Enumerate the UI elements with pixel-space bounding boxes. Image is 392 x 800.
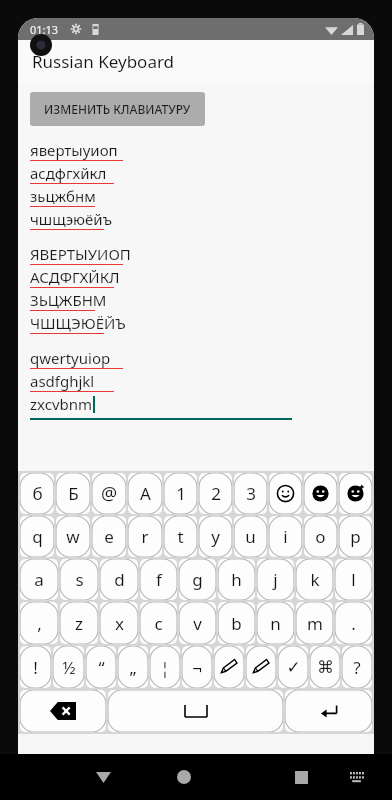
button[interactable]: z <box>60 602 98 644</box>
button[interactable]: x <box>100 602 138 644</box>
button[interactable]: A <box>128 473 162 514</box>
button[interactable]: Back <box>86 760 120 794</box>
button[interactable]: „ <box>118 646 148 688</box>
staticText: асдфгхйкл <box>30 163 107 183</box>
staticText: qwertyuiop <box>30 348 111 368</box>
staticText: g <box>192 568 203 591</box>
button[interactable]: r <box>128 516 162 557</box>
button[interactable]: f <box>140 559 177 600</box>
button[interactable]: ⌘ <box>310 646 340 688</box>
staticText: zxcvbnm <box>30 394 93 414</box>
button[interactable]: m <box>296 602 333 644</box>
button[interactable]: Emoji <box>304 473 337 514</box>
button[interactable]: Enter <box>285 690 372 732</box>
staticText: asdfghjkl <box>30 371 95 391</box>
button[interactable]: n <box>257 602 294 644</box>
button[interactable]: 3 <box>234 473 267 514</box>
button[interactable]: j <box>257 559 294 600</box>
staticText: ¬ <box>192 656 202 679</box>
button[interactable]: a <box>20 559 58 600</box>
button[interactable]: w <box>56 516 90 557</box>
button[interactable]: 1 <box>164 473 197 514</box>
staticText: i <box>283 525 288 548</box>
staticText: a <box>34 568 44 591</box>
staticText: s <box>75 568 84 591</box>
staticText: ? <box>353 656 361 679</box>
button[interactable]: q <box>20 516 54 557</box>
staticText: j <box>273 568 278 591</box>
staticText: f <box>156 568 162 591</box>
staticText: 01:13 <box>30 22 59 37</box>
staticText: q <box>32 525 43 548</box>
button[interactable]: h <box>218 559 255 600</box>
button[interactable]: b <box>218 602 255 644</box>
button[interactable]: p <box>339 516 372 557</box>
staticText: c <box>154 612 163 635</box>
button[interactable]: @ <box>92 473 126 514</box>
button[interactable]: e <box>92 516 126 557</box>
button[interactable]: . <box>335 602 372 644</box>
staticText: 2 <box>211 482 221 505</box>
button[interactable]: Space <box>108 690 283 732</box>
button[interactable]: ? <box>342 646 372 688</box>
button[interactable]: ¬ <box>182 646 212 688</box>
staticText: o <box>315 525 326 548</box>
staticText: A <box>140 482 151 505</box>
staticText: y <box>211 525 220 548</box>
staticText: l <box>351 568 356 591</box>
button[interactable]: d <box>100 559 138 600</box>
button[interactable]: g <box>179 559 216 600</box>
button[interactable]: o <box>304 516 337 557</box>
staticText: ⌘ <box>317 657 334 677</box>
button[interactable]: k <box>296 559 333 600</box>
button[interactable]: ! <box>20 646 51 688</box>
staticText: Russian Keyboard <box>32 50 175 73</box>
staticText: @ <box>101 481 118 506</box>
staticText: . <box>351 612 356 635</box>
button[interactable]: “ <box>86 646 116 688</box>
button[interactable]: v <box>179 602 216 644</box>
staticText: “ <box>98 656 105 679</box>
button[interactable]: 2 <box>199 473 232 514</box>
staticText: зьцжбнм <box>30 186 96 206</box>
staticText: „ <box>129 656 137 679</box>
button[interactable]: u <box>234 516 267 557</box>
button[interactable]: ¦ <box>150 646 180 688</box>
button[interactable]: i <box>269 516 302 557</box>
button[interactable]: , <box>20 602 58 644</box>
button[interactable]: t <box>164 516 197 557</box>
staticText: ЧШЩЭЮЁЙЪ <box>30 313 126 333</box>
staticText: p <box>350 525 361 548</box>
staticText: h <box>231 568 242 591</box>
staticText: r <box>141 525 149 548</box>
staticText: z <box>75 612 83 635</box>
button[interactable]: l <box>335 559 372 600</box>
staticText: b <box>231 612 242 635</box>
button[interactable]: c <box>140 602 177 644</box>
button[interactable]: Emoji <box>339 473 372 514</box>
button[interactable]: s <box>60 559 98 600</box>
button[interactable]: Б <box>56 473 90 514</box>
staticText: чшщэюёйъ <box>30 209 113 229</box>
button[interactable]: б <box>20 473 54 514</box>
button[interactable]: Backspace <box>20 690 106 732</box>
staticText: u <box>245 525 256 548</box>
button[interactable]: y <box>199 516 232 557</box>
button[interactable]: Recents <box>284 760 318 794</box>
button[interactable]: ✓ <box>278 646 308 688</box>
button[interactable]: Home <box>167 760 201 794</box>
staticText: б <box>32 482 43 505</box>
staticText: ½ <box>62 656 76 679</box>
staticText: ! <box>33 656 38 679</box>
staticText: Б <box>68 482 79 505</box>
button[interactable]: Pencil <box>214 646 244 688</box>
button[interactable]: Keyboard <box>342 762 372 792</box>
staticText: m <box>307 612 323 635</box>
button[interactable]: ИЗМЕНИТЬ КЛАВИАТУРУ <box>30 92 205 126</box>
staticText: e <box>104 525 114 548</box>
button[interactable]: ½ <box>53 646 84 688</box>
staticText: ¦ <box>160 656 170 679</box>
staticText: АСДФГХЙКЛ <box>30 267 120 287</box>
button[interactable]: Emoji <box>269 473 302 514</box>
button[interactable]: Pencil <box>246 646 276 688</box>
